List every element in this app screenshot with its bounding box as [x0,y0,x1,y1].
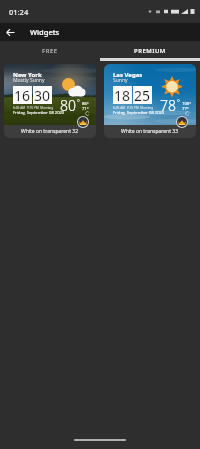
staticText: 16 [14,86,31,104]
staticText: White on transparent 32 [21,128,79,135]
staticText: 86° [82,101,89,107]
staticText: ° [177,98,180,107]
staticText: 6:26 AM 7:15 PM Morning [13,106,54,110]
staticText: 30 [34,86,51,104]
button[interactable]: Back [0,23,20,41]
button[interactable]: FREE [0,41,100,61]
staticText: 18 [114,86,131,104]
staticText: White on transparent 33 [121,128,179,135]
staticText: 6:26 AM 7:15 PM Morning [113,106,154,110]
button[interactable]: PREMIUM [100,41,200,61]
staticText: 80 [60,96,76,115]
staticText: 100° [182,101,191,107]
staticText: FREE [42,47,58,55]
staticText: Friday, September 08 2023 [113,110,165,116]
staticText: Friday, September 08 2023 [13,110,65,116]
staticText: Sunny [113,77,128,84]
button[interactable]: Las Vegas [104,64,196,138]
staticText: Las Vegas [113,71,143,79]
staticText: 25 [134,86,151,104]
staticText: 01:24 [9,7,29,17]
staticText: PREMIUM [134,47,166,55]
button[interactable]: New York [4,64,96,138]
staticText: New York [13,71,42,79]
staticText: ° [77,98,80,107]
staticText: Widgets [30,27,60,37]
staticText: 78 [160,96,176,115]
staticText: Mostly Sunny [13,77,45,84]
staticText: 71° [82,106,89,112]
staticText: 77° [182,106,189,112]
